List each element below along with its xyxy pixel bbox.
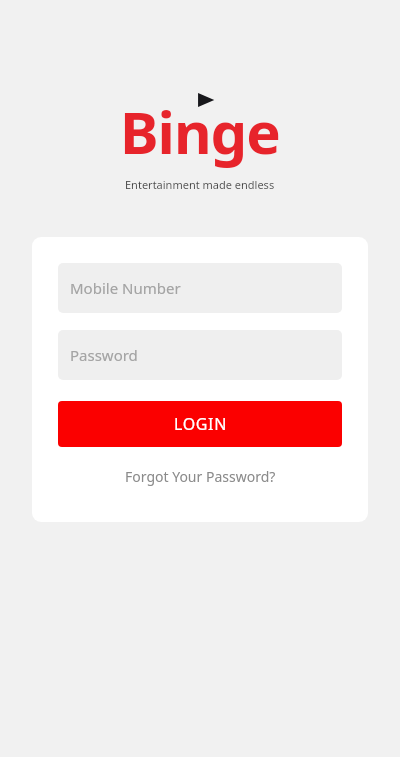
button[interactable]: Forgot Your Password? <box>117 461 284 492</box>
staticText: Binge <box>120 92 280 171</box>
staticText: Forgot Your Password? <box>125 467 276 486</box>
staticText: LOGIN <box>174 413 227 435</box>
staticText: Mobile Number <box>70 278 181 298</box>
button[interactable]: Mobile Number <box>58 263 342 313</box>
staticText: Entertainment made endless <box>125 177 275 192</box>
button[interactable]: Password <box>58 330 342 380</box>
button[interactable]: LOGIN <box>58 401 342 447</box>
staticText: Password <box>70 345 138 365</box>
